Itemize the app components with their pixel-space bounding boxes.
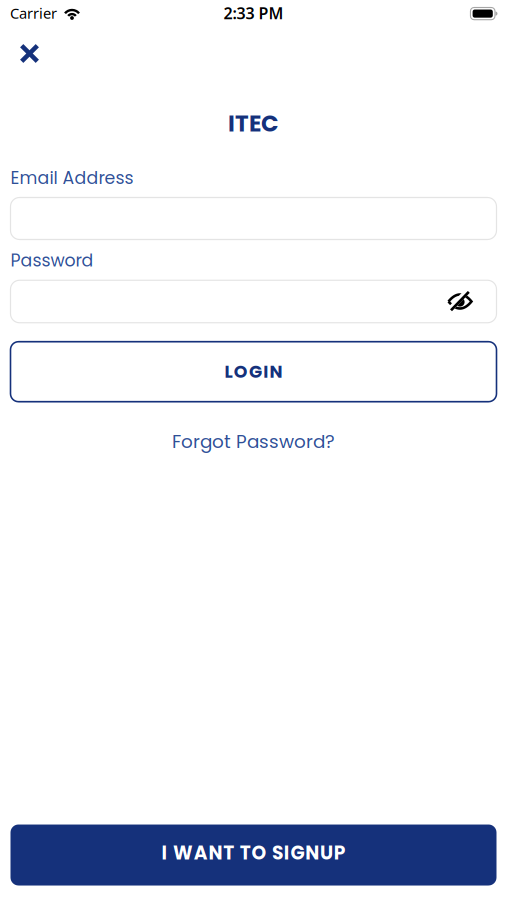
- staticText: I WANT TO SIGNUP: [161, 840, 346, 866]
- staticText: 2:33 PM: [223, 2, 283, 24]
- button[interactable]: Forgot Password?: [172, 429, 335, 454]
- button[interactable]: L: [10, 342, 496, 402]
- staticText: I: [263, 360, 268, 384]
- staticText: Forgot Password?: [172, 429, 335, 454]
- button[interactable]: Show password: [443, 284, 477, 318]
- button[interactable]: Email Address: [10, 197, 496, 239]
- staticText: ITEC: [228, 107, 279, 140]
- staticText: Carrier: [10, 3, 57, 23]
- staticText: Email Address: [10, 166, 133, 190]
- button[interactable]: I WANT TO SIGNUP: [10, 824, 496, 885]
- staticText: Password: [10, 248, 93, 273]
- staticText: G: [249, 360, 262, 384]
- staticText: N: [269, 360, 282, 384]
- staticText: O: [234, 360, 248, 384]
- button[interactable]: Close: [12, 36, 46, 70]
- button[interactable]: Password: [10, 280, 496, 323]
- staticText: L: [225, 360, 233, 384]
